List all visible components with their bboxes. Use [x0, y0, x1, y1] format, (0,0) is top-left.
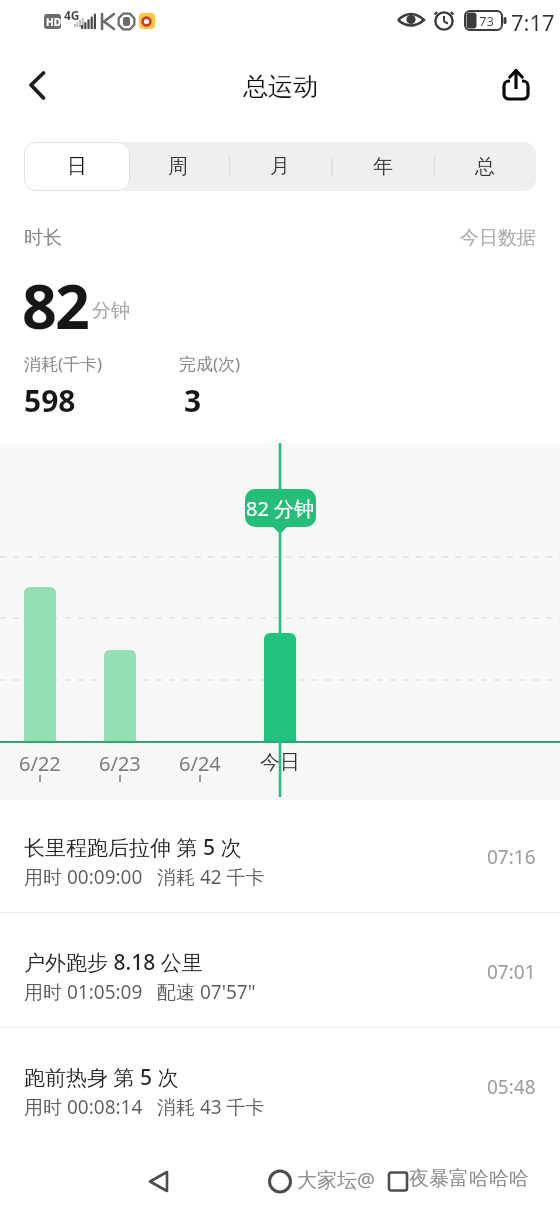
staticText: 总运动 [243, 71, 318, 102]
staticText: 82 [22, 264, 88, 347]
staticText: 6/22 [19, 750, 61, 777]
staticText: 跑前热身 第 5 次 [24, 1063, 179, 1092]
staticText: 时长 [24, 226, 62, 250]
button[interactable] [14, 60, 64, 110]
staticText: 消耗 43 千卡 [157, 1094, 265, 1120]
button[interactable] [128, 1151, 188, 1211]
staticText: 今日数据 [460, 226, 536, 250]
staticText: 82 分钟 [246, 495, 315, 522]
staticText: 年 [373, 154, 393, 179]
staticText: 07:16 [487, 844, 536, 870]
staticText: 73 [479, 12, 494, 30]
staticText: 周 [168, 154, 188, 179]
staticText: 今日 [260, 750, 300, 775]
staticText: 分钟 [92, 299, 130, 323]
staticText: 05:48 [487, 1074, 536, 1100]
button[interactable] [0, 934, 560, 1044]
staticText: 户外跑步 8.18 公里 [24, 948, 203, 977]
button[interactable]: 月 [229, 142, 331, 191]
staticText: 总 [475, 154, 495, 179]
staticText: 夜暴富哈哈哈 [409, 1166, 529, 1191]
staticText: 3 [184, 380, 202, 421]
staticText: 长里程跑后拉伸 第 5 次 [24, 833, 242, 862]
staticText: 598 [24, 380, 76, 421]
staticText: 日 [67, 154, 87, 179]
button[interactable]: 总 [434, 142, 536, 191]
staticText: HD [46, 15, 61, 29]
button[interactable] [0, 819, 560, 929]
button[interactable] [24, 142, 130, 191]
staticText: 用时 00:08:14 [24, 1094, 143, 1120]
staticText: 大家坛@ [297, 1166, 375, 1193]
staticText: 6/24 [179, 750, 221, 777]
button[interactable] [494, 60, 540, 110]
button[interactable]: 日 [26, 142, 128, 191]
button[interactable]: 周 [127, 142, 229, 191]
staticText: 用时 00:09:00 [24, 864, 143, 890]
button[interactable]: 年 [332, 142, 434, 191]
staticText: 7:17 [511, 7, 555, 37]
staticText: 配速 07'57" [157, 979, 256, 1005]
staticText: 消耗 42 千卡 [157, 864, 265, 890]
button[interactable] [250, 1151, 310, 1211]
button[interactable] [0, 1049, 560, 1159]
staticText: 4G [64, 7, 80, 23]
staticText: 07:01 [487, 959, 536, 985]
button[interactable] [368, 1151, 428, 1211]
staticText: 完成(次) [179, 352, 241, 375]
staticText: 消耗(千卡) [24, 352, 103, 375]
staticText: 用时 01:05:09 [24, 979, 143, 1005]
staticText: 6/23 [99, 750, 141, 777]
staticText: 月 [270, 154, 290, 179]
